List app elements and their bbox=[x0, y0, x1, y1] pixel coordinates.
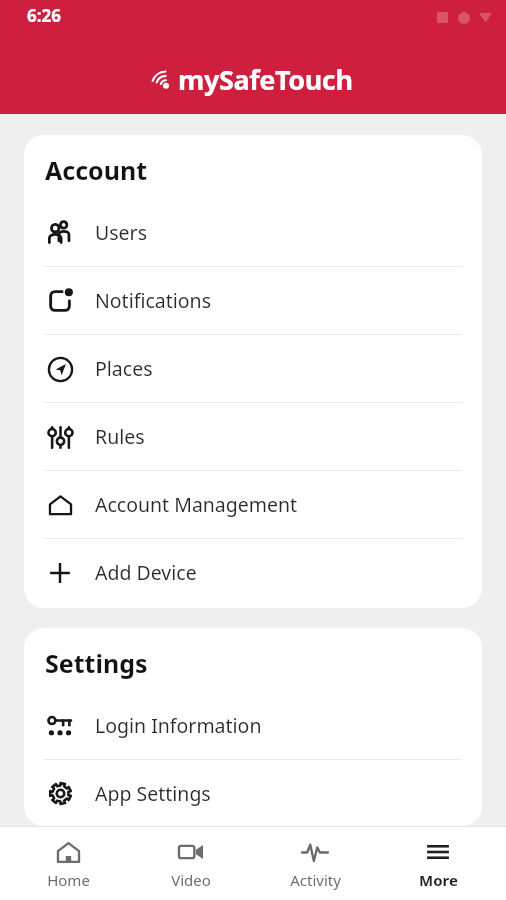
button[interactable]: Account Management bbox=[24, 471, 482, 538]
staticText: Places bbox=[95, 355, 153, 382]
button[interactable]: Home bbox=[12, 832, 124, 895]
button[interactable]: Add Device bbox=[24, 539, 482, 606]
staticText: Account Management bbox=[95, 491, 298, 518]
staticText: Video bbox=[171, 870, 211, 890]
staticText: Activity bbox=[290, 870, 341, 890]
staticText: Home bbox=[47, 870, 90, 890]
staticText: Users bbox=[95, 219, 147, 246]
staticText: Rules bbox=[95, 423, 145, 450]
button[interactable]: Video bbox=[135, 832, 247, 895]
button[interactable]: More bbox=[382, 832, 494, 895]
button[interactable]: App Settings bbox=[24, 760, 482, 826]
button[interactable]: Login Information bbox=[24, 692, 482, 759]
staticText: Login Information bbox=[95, 712, 262, 739]
staticText: App Settings bbox=[95, 780, 211, 807]
staticText: More bbox=[419, 870, 458, 890]
staticText: Add Device bbox=[95, 559, 197, 586]
button[interactable]: Rules bbox=[24, 403, 482, 470]
staticText: mySafeTouch bbox=[178, 61, 353, 98]
staticText: Account bbox=[45, 153, 148, 187]
staticText: Notifications bbox=[95, 287, 211, 314]
staticText: 6:26 bbox=[27, 4, 61, 27]
staticText: Settings bbox=[45, 646, 148, 680]
button[interactable]: Places bbox=[24, 335, 482, 402]
button[interactable]: Users bbox=[24, 199, 482, 266]
button[interactable]: Notifications bbox=[24, 267, 482, 334]
button[interactable]: Activity bbox=[259, 832, 371, 895]
